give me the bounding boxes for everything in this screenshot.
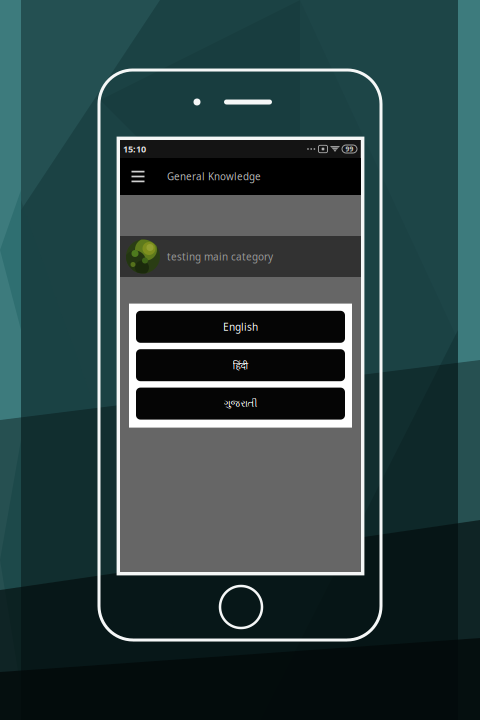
staticText: ગુજરાતી [223,399,257,409]
staticText: हिंदी [232,358,248,372]
staticText: General Knowledge [167,170,261,183]
button[interactable]: ગુજરાતી [136,388,345,420]
staticText: 15:10 [123,143,146,155]
button[interactable]: Menu [123,158,153,195]
staticText: English [223,320,258,334]
button[interactable]: testing main category [120,236,361,277]
staticText: 99 [345,145,353,153]
button[interactable]: English [136,311,345,343]
button[interactable]: हिंदी [136,349,345,381]
staticText: testing main category [167,250,273,263]
